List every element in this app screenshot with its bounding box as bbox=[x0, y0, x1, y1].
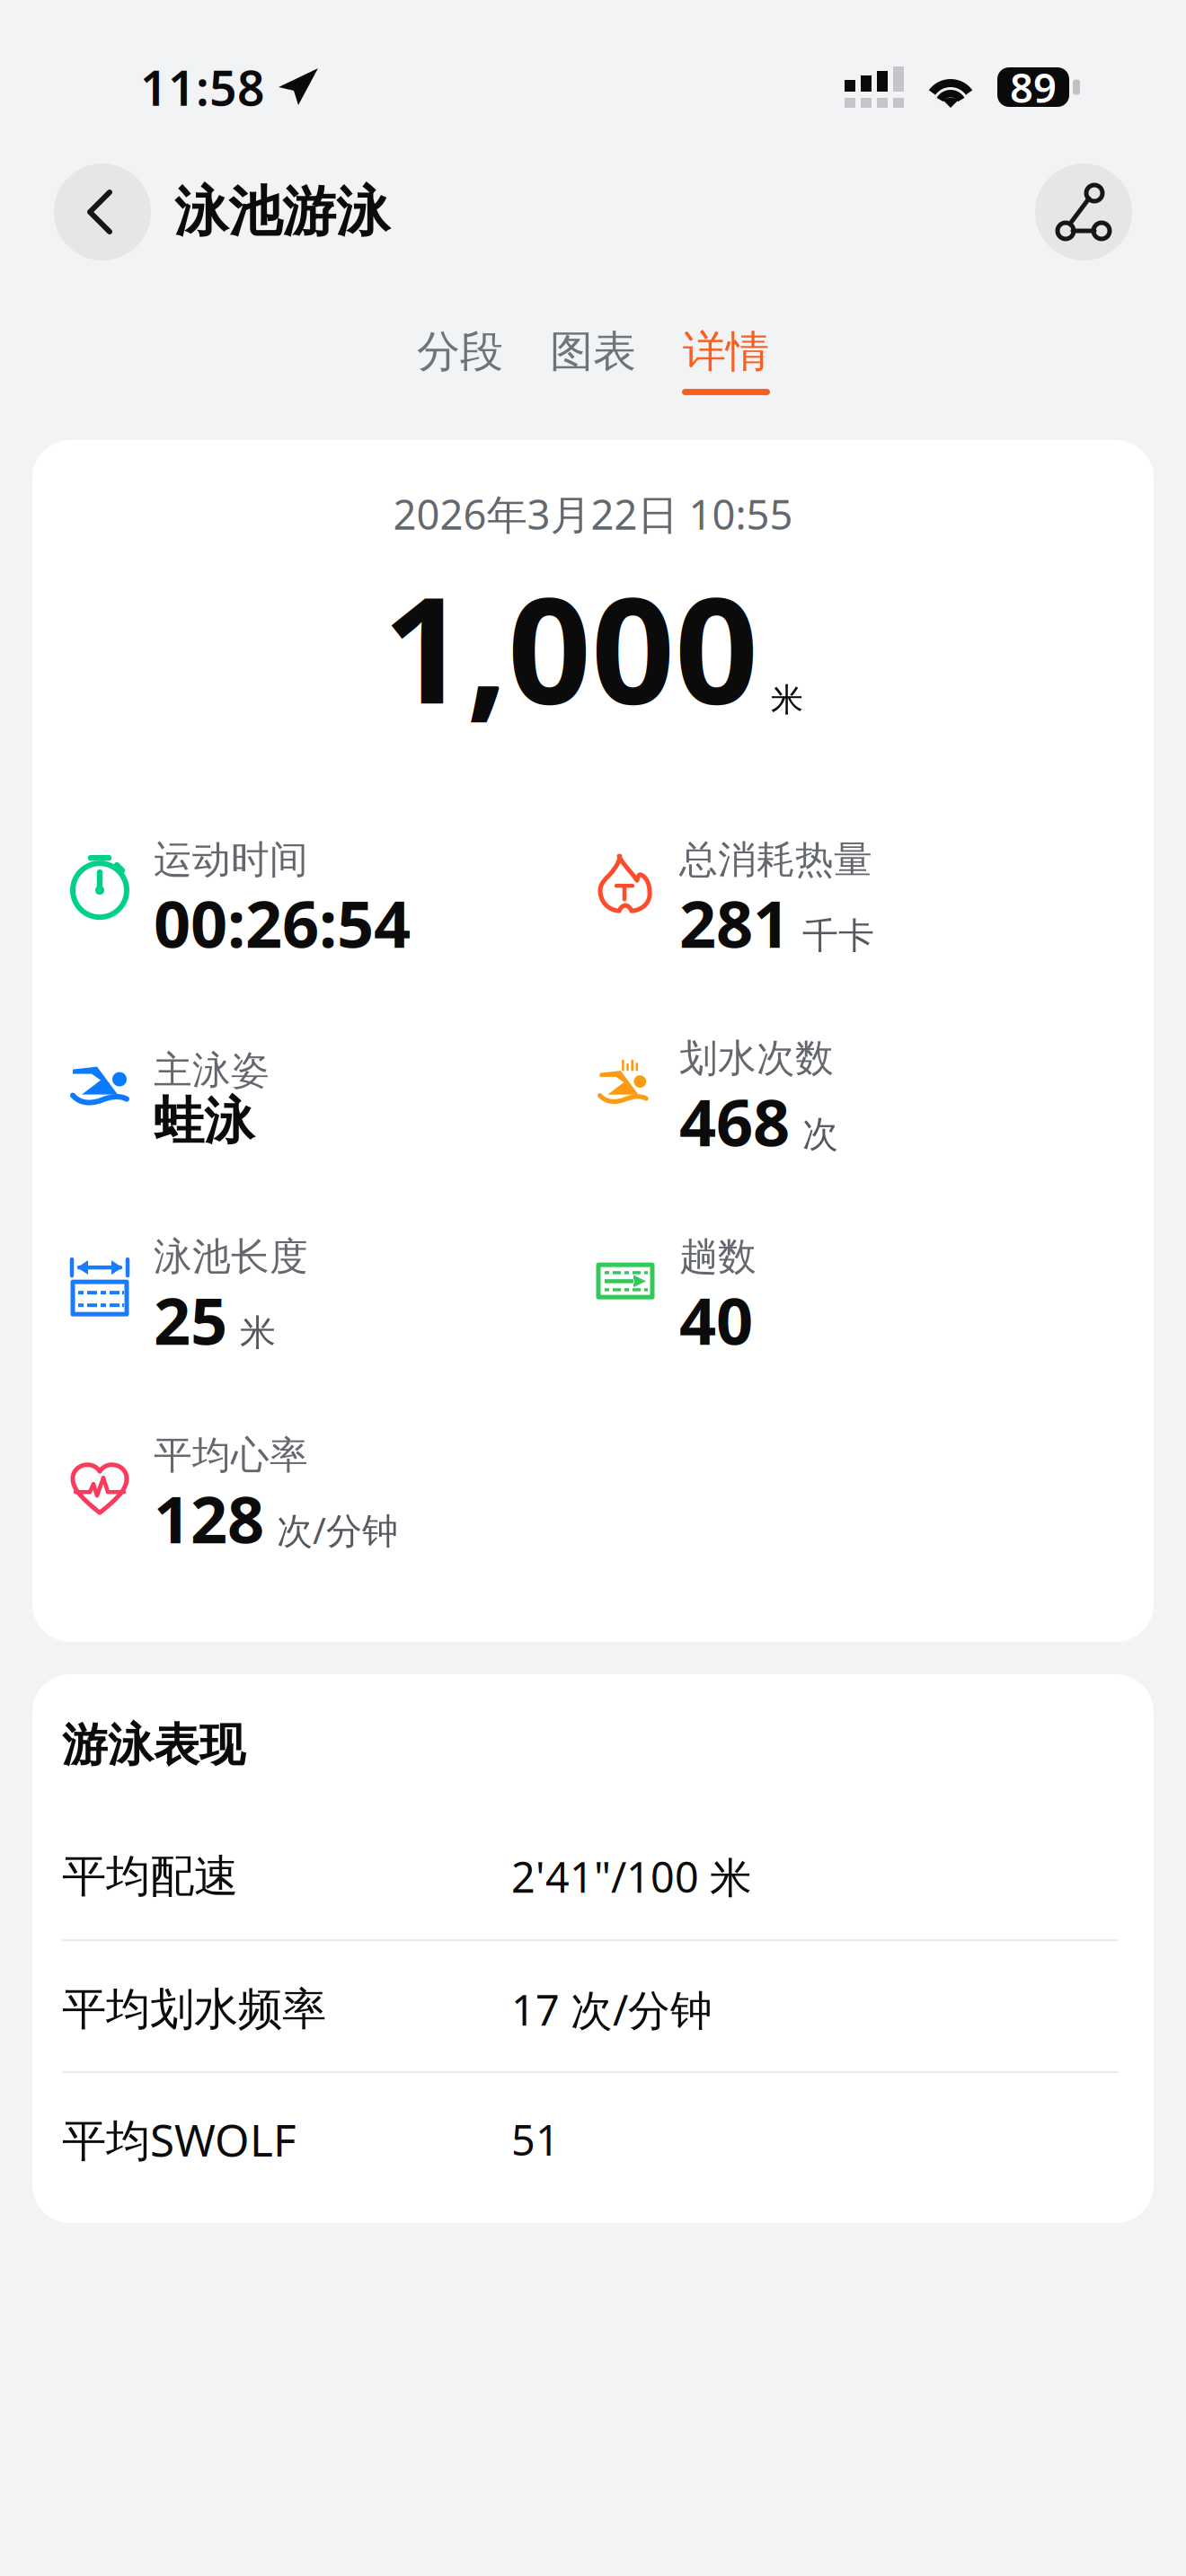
staticText: 25 bbox=[154, 1277, 227, 1363]
staticText: 2026年3月22日 10:55 bbox=[393, 487, 793, 541]
button[interactable]: 图表 bbox=[527, 325, 659, 395]
button[interactable]: 详情 bbox=[659, 325, 792, 395]
staticText: 划水次数 bbox=[679, 1035, 834, 1082]
staticText: 平均配速 bbox=[62, 1849, 238, 1904]
button[interactable]: 返回 bbox=[54, 163, 151, 260]
staticText: 千卡 bbox=[802, 914, 874, 958]
staticText: 米 bbox=[771, 680, 803, 720]
staticText: 蛙泳 bbox=[154, 1090, 254, 1152]
staticText: 89 bbox=[1010, 60, 1057, 114]
staticText: 128 bbox=[154, 1475, 264, 1561]
staticText: 米 bbox=[240, 1311, 276, 1355]
staticText: 2'41"/100 米 bbox=[511, 1849, 752, 1904]
staticText: 1,000 bbox=[383, 550, 758, 744]
staticText: 平均划水频率 bbox=[62, 1982, 326, 2037]
staticText: 17 次/分钟 bbox=[511, 1982, 712, 2037]
button[interactable]: 分享 bbox=[1035, 163, 1132, 260]
staticText: 468 bbox=[679, 1078, 790, 1164]
staticText: 00:26:54 bbox=[154, 880, 411, 966]
staticText: 11:58 bbox=[140, 55, 265, 119]
staticText: 281 bbox=[679, 880, 790, 966]
staticText: 平均SWOLF bbox=[62, 2110, 296, 2169]
staticText: 主泳姿 bbox=[154, 1047, 270, 1094]
staticText: 图表 bbox=[550, 325, 636, 378]
staticText: 次/分钟 bbox=[277, 1506, 398, 1554]
staticText: 总消耗热量 bbox=[679, 836, 872, 883]
staticText: 游泳表现 bbox=[62, 1717, 245, 1773]
staticText: 趟数 bbox=[679, 1233, 757, 1280]
staticText: 详情 bbox=[683, 325, 769, 378]
staticText: 运动时间 bbox=[154, 836, 308, 883]
staticText: 泳池游泳 bbox=[174, 179, 390, 245]
button[interactable]: 分段 bbox=[394, 325, 527, 395]
staticText: 分段 bbox=[417, 325, 503, 378]
staticText: 次 bbox=[802, 1112, 838, 1156]
staticText: 平均心率 bbox=[154, 1432, 308, 1479]
staticText: 40 bbox=[679, 1277, 753, 1363]
staticText: 泳池长度 bbox=[154, 1233, 308, 1280]
staticText: 51 bbox=[511, 2112, 560, 2167]
